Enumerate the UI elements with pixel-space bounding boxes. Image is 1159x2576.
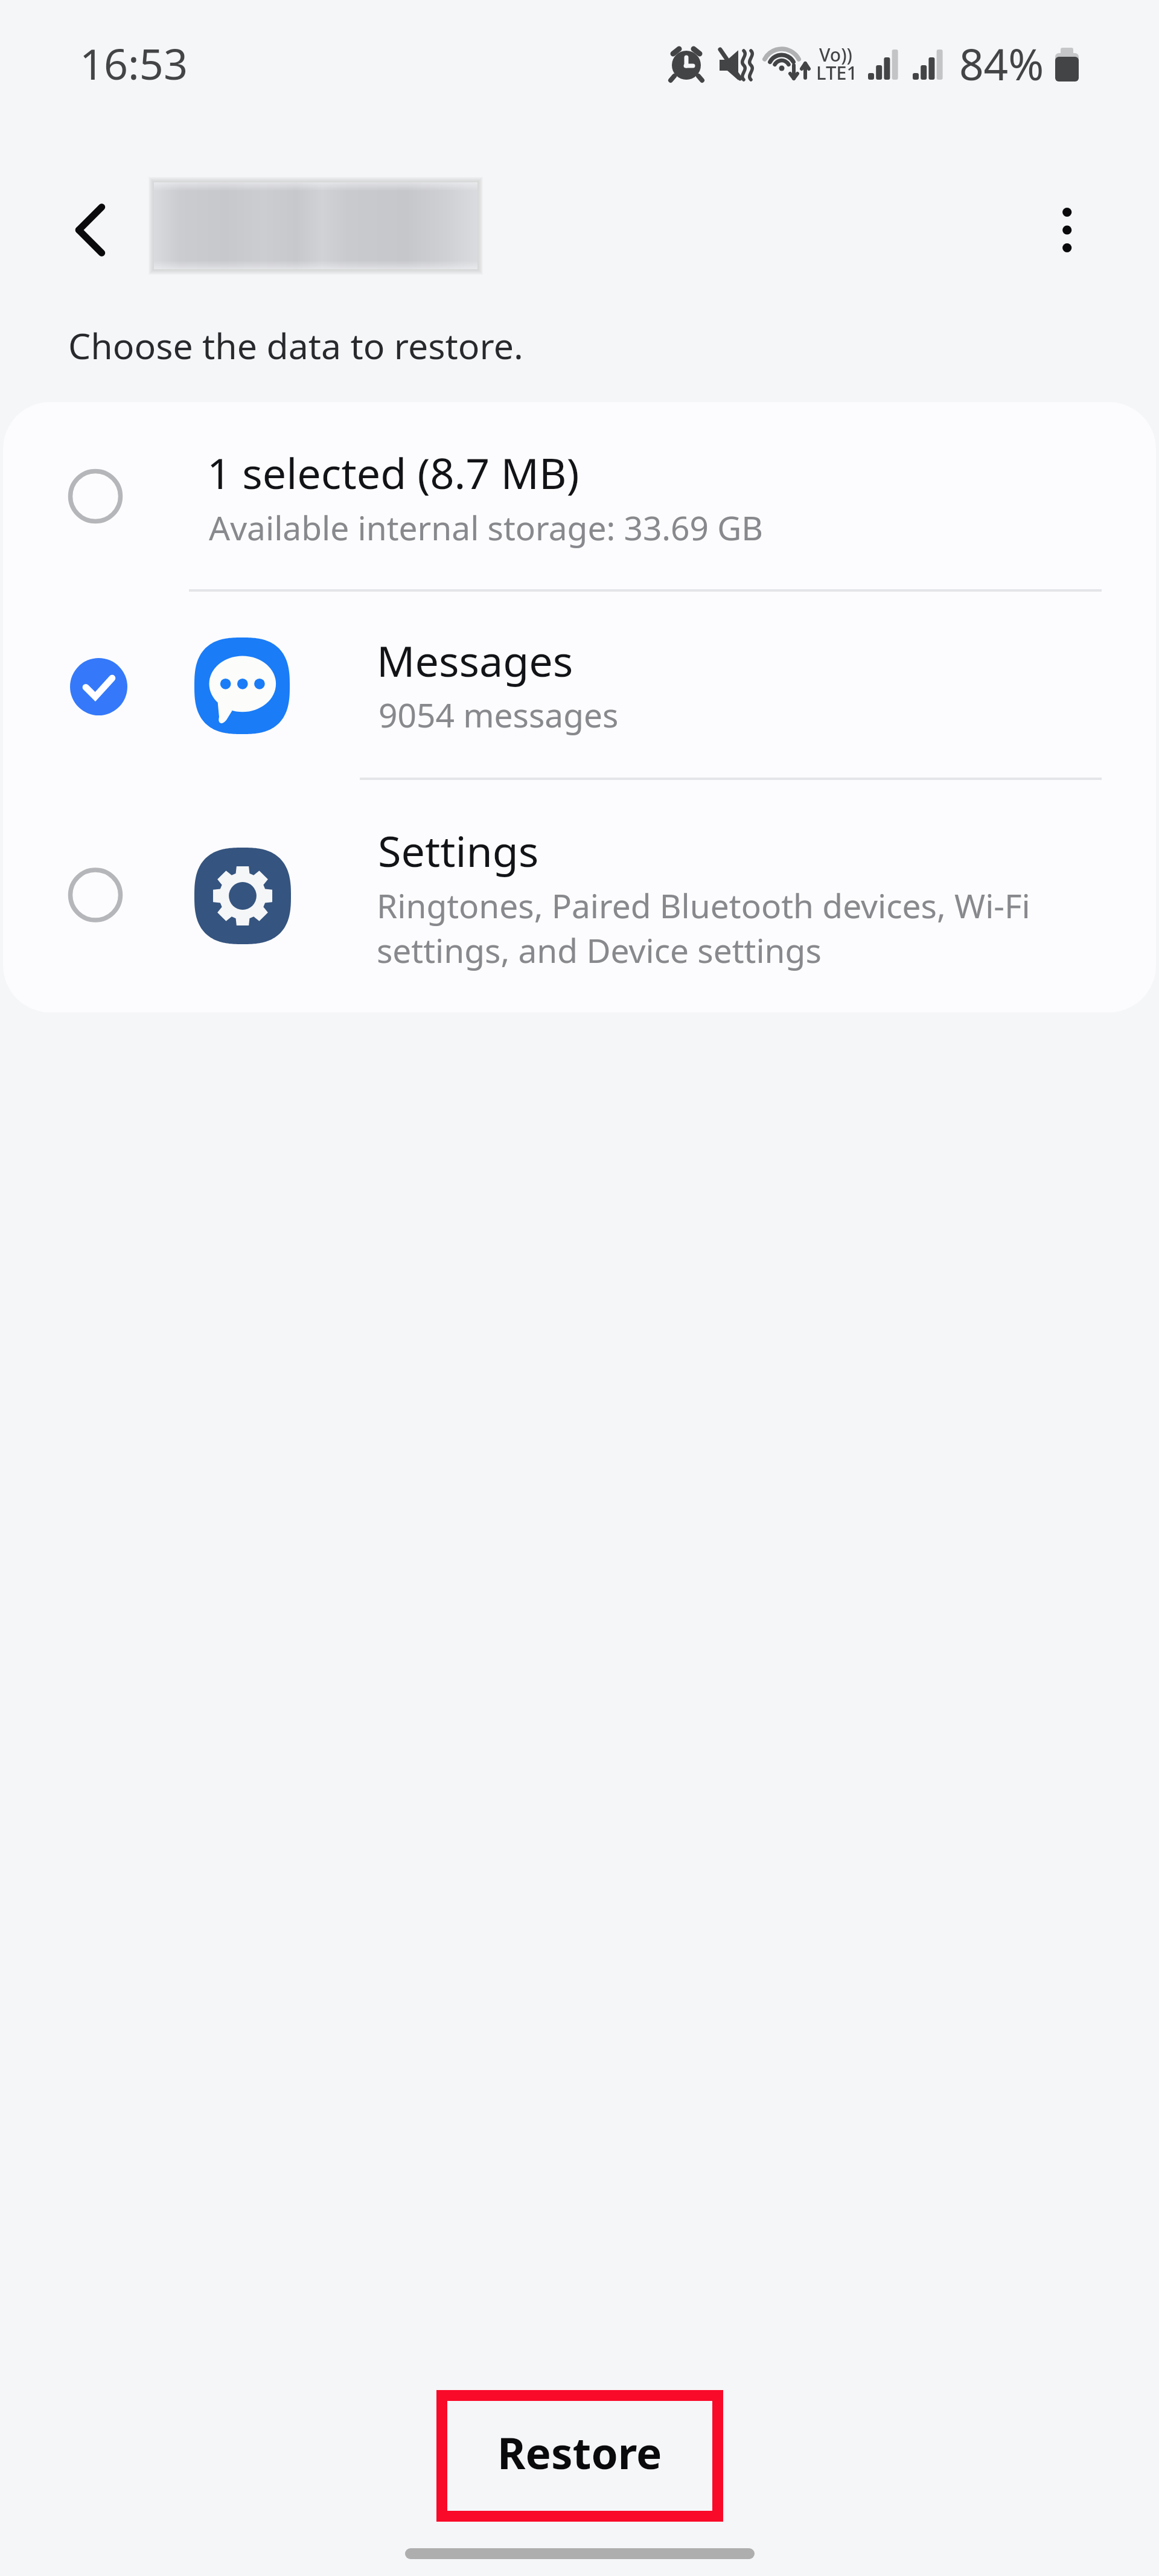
staticText: Available internal storage: 33.69 GB [209,509,764,549]
staticText: Choose the data to restore. [68,325,523,368]
button[interactable]: Restore [436,2390,723,2522]
button[interactable]: Settings [3,781,1156,1012]
staticText: Vo)) [819,45,852,66]
staticText: Messages [377,637,573,688]
staticText: Restore [497,2429,662,2480]
staticText: 16:53 [80,40,188,91]
staticText: 1 selected (8.7 MB) [207,449,579,500]
staticText: LTE1 [816,62,858,85]
button[interactable]: Messages [3,592,1156,780]
staticText: Ringtones, Paired Bluetooth devices, Wi-… [377,883,1101,973]
staticText: Settings [378,827,539,878]
button[interactable]: More options [1028,191,1106,269]
staticText: 9054 messages [378,696,619,736]
button[interactable]: 1 selected (8.7 MB) [3,402,1156,590]
staticText: 84% [959,40,1044,91]
button[interactable]: Back [36,191,115,269]
